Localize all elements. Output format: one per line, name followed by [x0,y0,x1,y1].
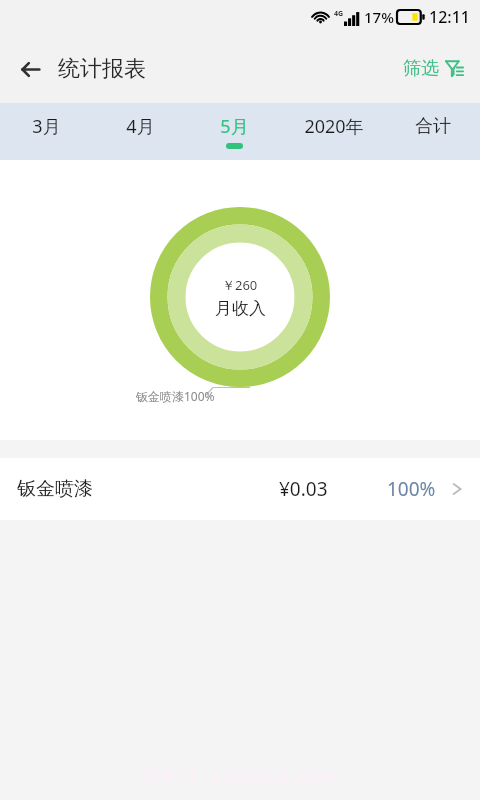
button[interactable]: 3月 [0,103,93,160]
staticText: 合计 [415,115,451,138]
staticText: 3月 [32,114,61,139]
staticText: 100% [387,476,436,502]
button[interactable]: 筛选 [399,51,468,86]
staticText: 钣金喷漆 [17,477,93,501]
button[interactable]: 4月 [93,103,187,160]
staticText: ¥0.03 [279,476,328,502]
staticText: 4G [334,9,344,19]
staticText: 统计报表 [58,55,146,83]
button[interactable]: 5月 [187,103,281,160]
staticText: 12:11 [429,6,470,28]
button[interactable]: 2020年 [281,103,386,160]
staticText: 钣金喷漆100% [136,388,215,404]
staticText: 2020年 [304,114,364,139]
staticText: 4月 [126,114,155,139]
button[interactable]: Back [8,47,52,91]
button[interactable]: 合计 [386,103,480,160]
button[interactable]: 钣金喷漆 [0,458,480,520]
staticText: 5月 [220,114,249,139]
staticText: ￥260 [222,276,258,294]
staticText: 筛选 [403,57,439,80]
staticText: 17% [364,7,394,27]
staticText: 月收入 [215,298,266,319]
